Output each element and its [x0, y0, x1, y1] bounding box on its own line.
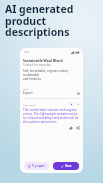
button[interactable]: Regenerate [69, 102, 73, 106]
staticText: AI generated product descriptions [5, 2, 74, 39]
staticText: Crafted for everyday [23, 63, 51, 67]
button[interactable]: Expert [23, 91, 80, 95]
staticText: This comfortable sweater with organic co… [23, 108, 80, 124]
staticText: Soft, breathable, organic cotton, sustai… [23, 69, 80, 81]
staticText: Tone [23, 87, 29, 90]
button[interactable]: Try again [24, 162, 49, 170]
staticText: Sustainable Wool Blend [23, 58, 63, 63]
staticText: Save [65, 164, 72, 168]
button[interactable]: Save [53, 162, 79, 170]
button[interactable]: Share [76, 126, 80, 130]
staticText: Try again [32, 164, 45, 168]
staticText: Expert [23, 91, 33, 95]
button[interactable]: More [76, 102, 80, 106]
button[interactable]: Like [69, 126, 73, 130]
staticText: Description [23, 103, 36, 106]
